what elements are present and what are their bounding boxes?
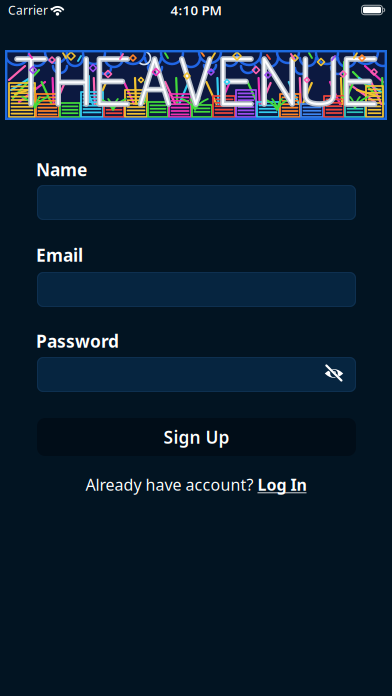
staticText: Email [36,243,83,266]
staticText: Carrier [8,2,48,18]
button[interactable] [37,357,356,392]
staticText: Log In [257,474,306,495]
button[interactable] [37,185,356,220]
staticText: Name [36,158,87,181]
button[interactable]: Log In [257,474,306,495]
button[interactable] [37,272,356,307]
staticText: Password [36,329,119,352]
button[interactable] [320,360,348,386]
button[interactable]: Sign Up [37,418,356,456]
staticText: Sign Up [163,425,229,448]
staticText: Already have account? [85,474,257,495]
staticText: 4:10 PM [170,1,221,19]
